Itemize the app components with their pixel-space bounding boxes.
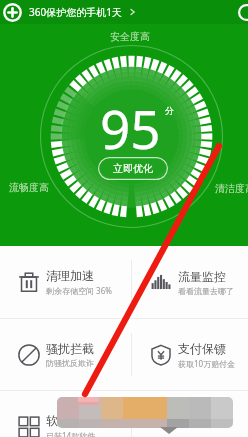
staticText: 已装14款软件 <box>46 430 96 437</box>
staticText: 软件管理 <box>46 413 94 428</box>
button[interactable]: 支付保镖 <box>132 319 248 390</box>
staticText: 支付保镖 <box>178 341 226 356</box>
staticText: 立即优化 <box>113 162 153 175</box>
button[interactable]: 骚扰拦截 <box>0 319 131 390</box>
staticText: 流量监控 <box>178 269 226 284</box>
staticText: 安全度高 <box>110 30 150 43</box>
staticText: 清洁度高 <box>215 182 248 195</box>
staticText: 剩余存储空间 36% <box>46 285 112 296</box>
staticText: 分 <box>165 105 174 116</box>
button[interactable]: 流量监控 <box>132 246 248 318</box>
button[interactable]: Protection <box>3 3 22 22</box>
button[interactable]: 清理加速 <box>0 246 131 318</box>
staticText: 骚扰拦截 <box>46 341 94 356</box>
button[interactable] <box>132 391 248 437</box>
button[interactable]: 软件管理 <box>0 391 131 437</box>
button[interactable]: 立即优化 <box>98 157 168 180</box>
staticText: 防骚扰反欺诈 <box>46 358 94 368</box>
staticText: 流畅度高 <box>9 181 49 194</box>
staticText: 获取10万赔付金 <box>178 358 236 369</box>
staticText: 看看流量去哪了 <box>178 286 234 296</box>
staticText: 95 <box>100 92 161 164</box>
staticText: 360保护您的手机1天 <box>29 5 122 19</box>
button[interactable]: Account <box>238 4 248 21</box>
staticText: 清理加速 <box>46 268 94 283</box>
